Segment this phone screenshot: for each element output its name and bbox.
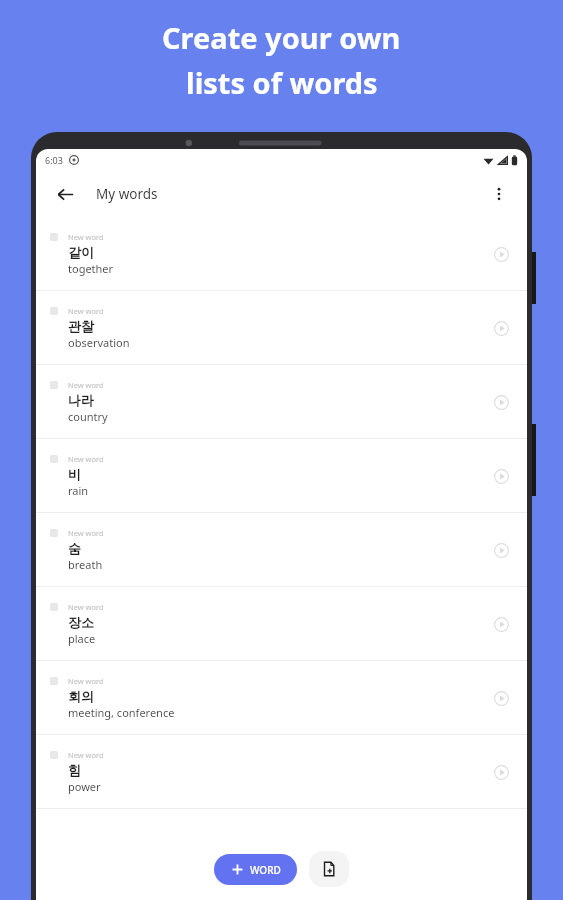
staticText: New word (68, 306, 104, 316)
button[interactable]: New word (36, 587, 527, 661)
staticText: New word (68, 602, 104, 612)
staticText: 나라 (68, 392, 94, 408)
staticText: 비 (68, 466, 81, 482)
staticText: New word (68, 676, 104, 686)
button[interactable]: WORD (214, 854, 297, 885)
staticText: New word (68, 380, 104, 390)
staticText: observation (68, 335, 130, 350)
staticText: My words (96, 185, 158, 203)
staticText: 장소 (68, 614, 94, 630)
button[interactable]: More options (482, 177, 516, 211)
staticText: WORD (250, 863, 281, 877)
button[interactable]: New word (36, 661, 527, 735)
staticText: New word (68, 232, 104, 242)
button[interactable]: New word (36, 365, 527, 439)
staticText: together (68, 261, 114, 276)
button[interactable]: New word (36, 439, 527, 513)
button[interactable]: Play pronunciation (489, 242, 513, 266)
button[interactable]: Play pronunciation (489, 390, 513, 414)
button[interactable]: Play pronunciation (489, 686, 513, 710)
staticText: meeting, conference (68, 705, 175, 720)
button[interactable]: Play pronunciation (489, 538, 513, 562)
staticText: 관찰 (68, 318, 94, 334)
staticText: lists of words (186, 63, 378, 102)
button[interactable]: Import words from file (309, 851, 349, 887)
staticText: New word (68, 528, 104, 538)
staticText: New word (68, 750, 104, 760)
button[interactable]: Play pronunciation (489, 612, 513, 636)
staticText: country (68, 409, 108, 424)
button[interactable]: Play pronunciation (489, 760, 513, 784)
button[interactable]: Play pronunciation (489, 316, 513, 340)
staticText: New word (68, 454, 104, 464)
staticText: power (68, 779, 101, 794)
staticText: breath (68, 557, 103, 572)
button[interactable]: Play pronunciation (489, 464, 513, 488)
button[interactable]: New word (36, 291, 527, 365)
button[interactable]: New word (36, 513, 527, 587)
staticText: place (68, 631, 96, 646)
staticText: 6:03 (45, 154, 63, 166)
button[interactable]: New word (36, 217, 527, 291)
staticText: 숨 (68, 540, 81, 556)
button[interactable]: New word (36, 735, 527, 809)
staticText: 회의 (68, 688, 94, 704)
staticText: Create your own (162, 18, 401, 57)
staticText: 같이 (68, 244, 94, 260)
staticText: 힘 (68, 762, 81, 778)
staticText: rain (68, 483, 89, 498)
button[interactable]: Back (48, 177, 82, 211)
